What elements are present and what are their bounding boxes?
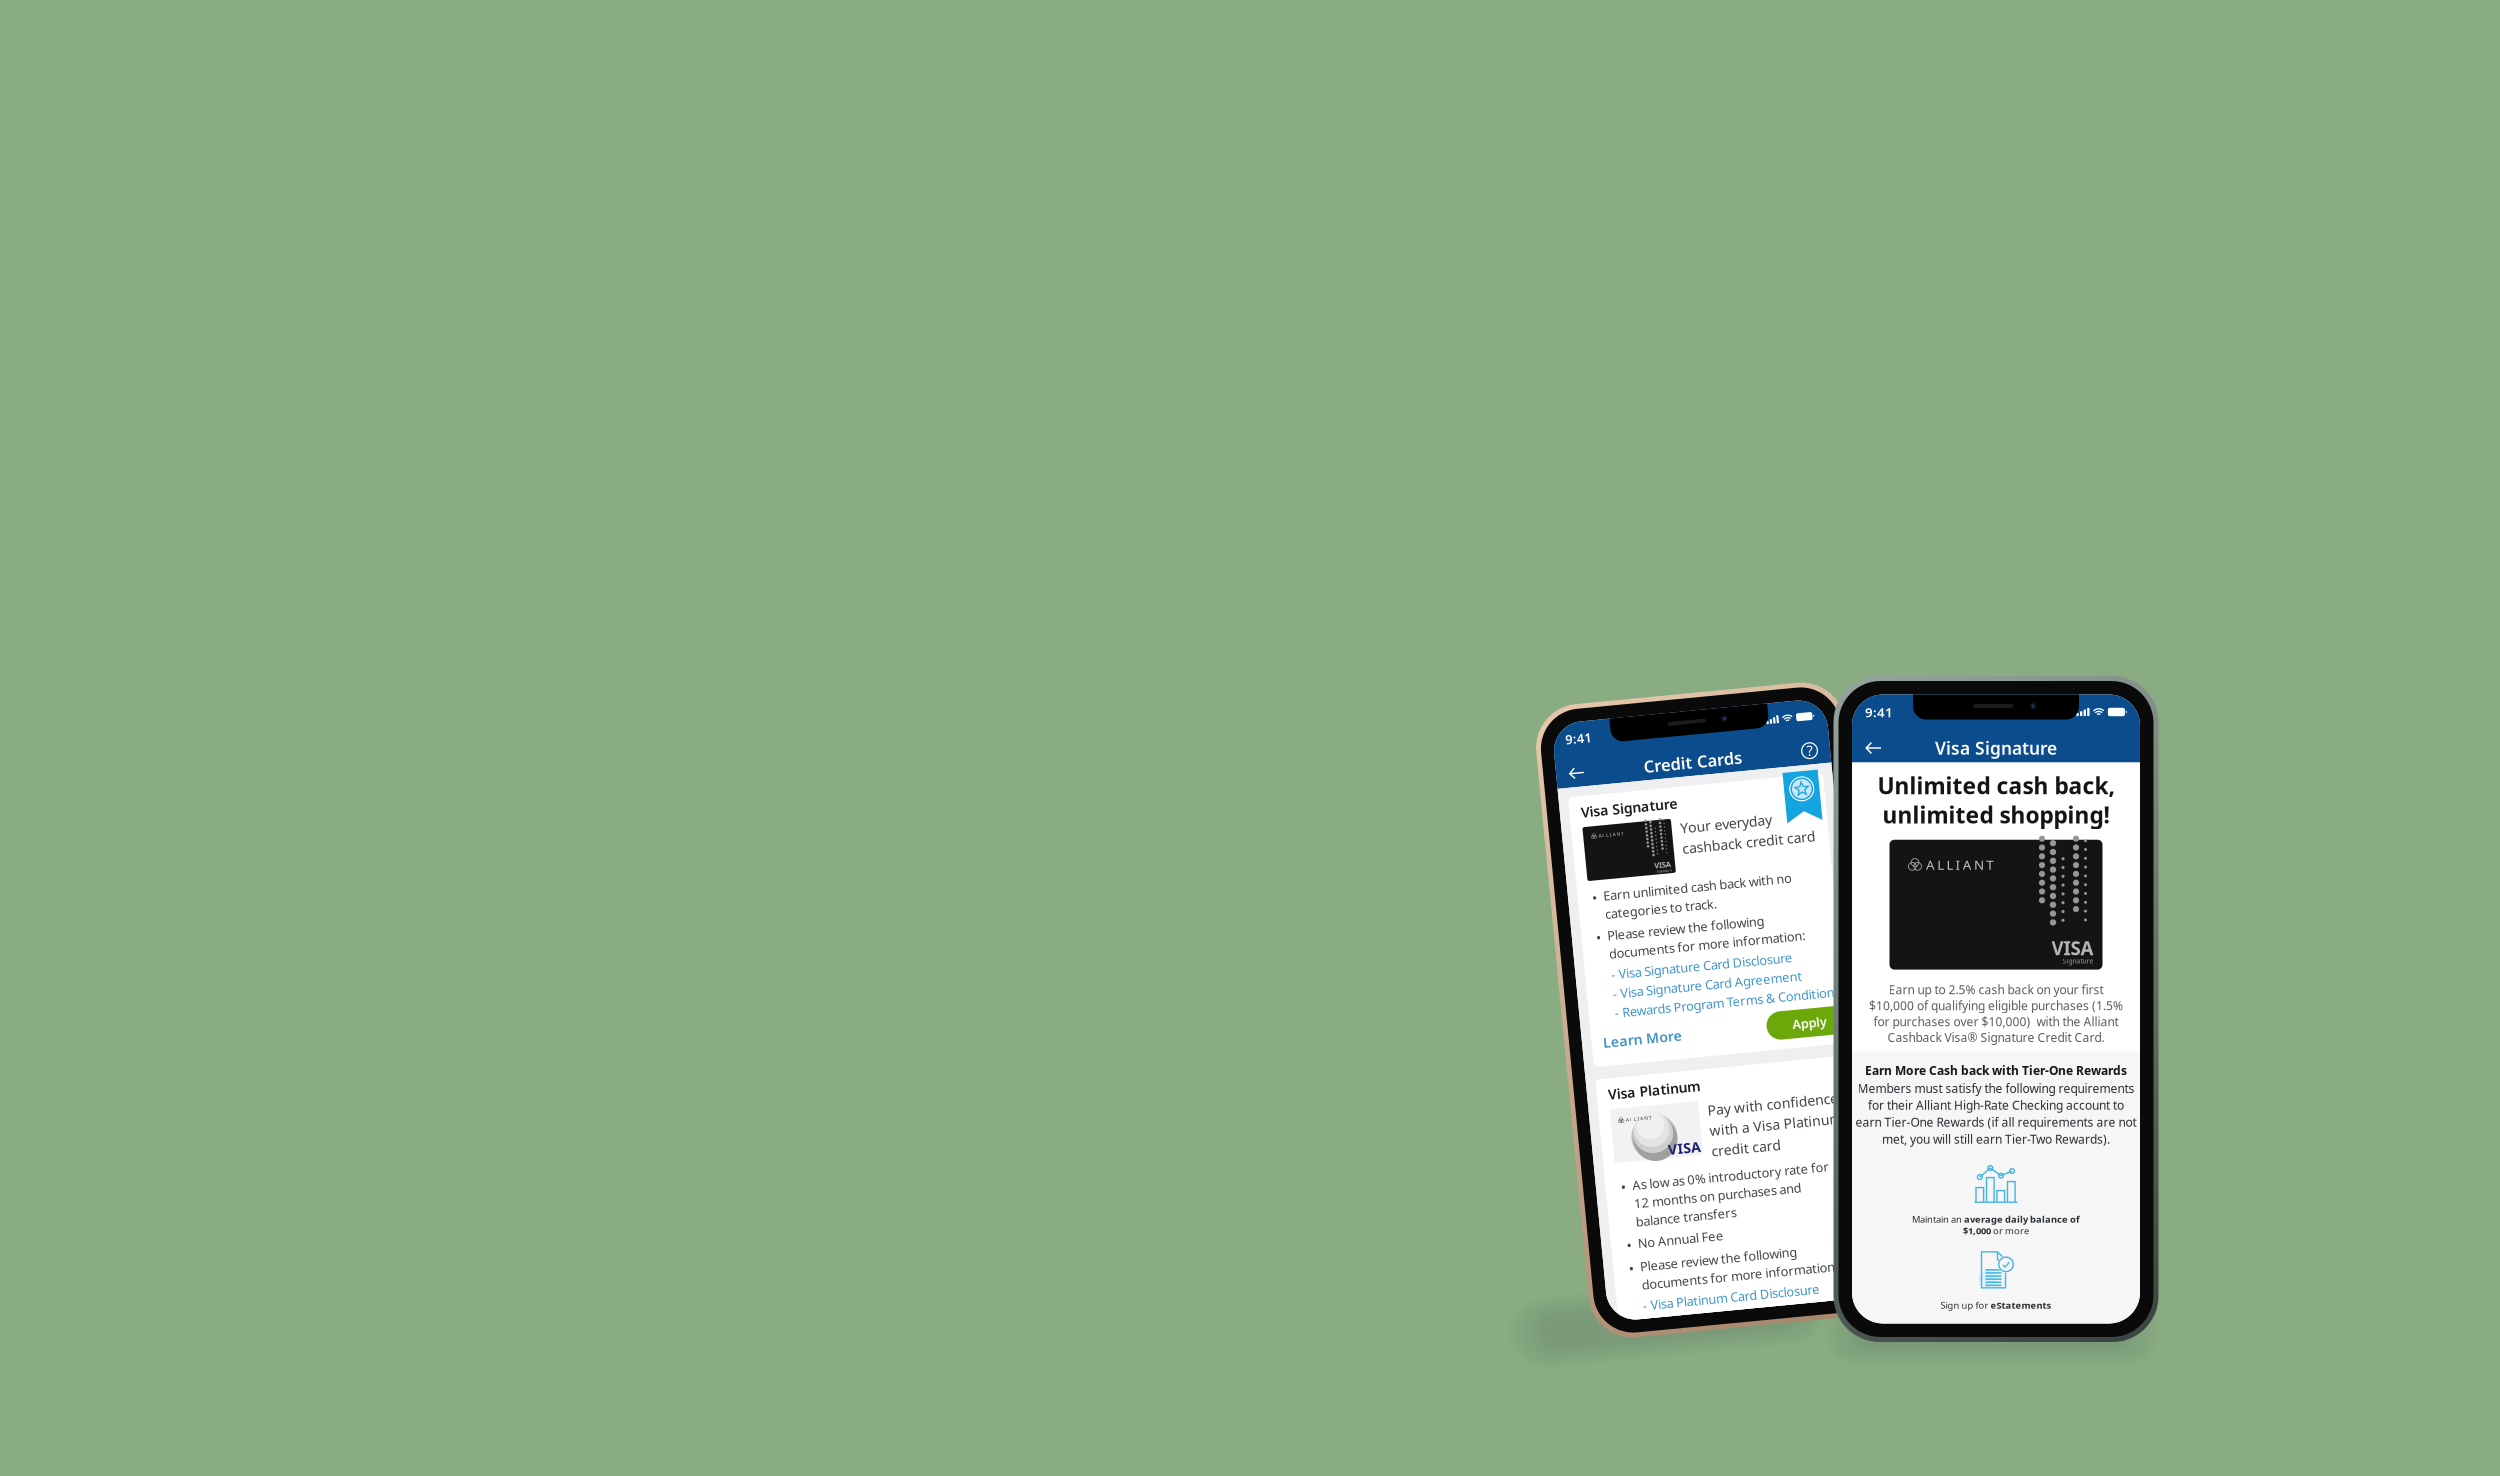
staticText: Visa Signature	[1595, 780, 1697, 800]
button[interactable]: -	[1610, 994, 1847, 1012]
staticText: Rewards Program Terms & Conditions	[1618, 994, 1847, 1012]
staticText: Earn up to 2.5% cash back on your first	[1888, 982, 2103, 997]
staticText: 9:41	[1586, 704, 1614, 722]
staticText: I	[1623, 813, 1625, 820]
staticText: VISA	[2051, 936, 2093, 960]
button[interactable]: -	[1610, 1302, 1796, 1319]
staticText: A	[1926, 856, 1935, 873]
staticText: Learn More	[1595, 1023, 1678, 1042]
staticText: A	[1963, 856, 1972, 873]
staticText: balance transfers	[1611, 1214, 1717, 1231]
button[interactable]: Back	[1852, 735, 1894, 761]
staticText: -	[1610, 974, 1614, 991]
staticText: documents for more information:	[1611, 1280, 1818, 1298]
staticText: categories to track.	[1610, 890, 1728, 908]
staticText: A	[1611, 813, 1614, 820]
staticText: L	[1946, 856, 1953, 873]
staticText: with a Visa Platinum	[1697, 1125, 1837, 1145]
staticText: -	[1610, 1302, 1614, 1319]
staticText: L	[1615, 813, 1618, 820]
staticText: T	[1635, 1112, 1638, 1119]
staticText: $10,000 of qualifying eligible purchases…	[1869, 998, 2123, 1013]
staticText: unlimited shopping!	[1882, 800, 2109, 830]
staticText: Cashback Visa® Signature Credit Card.	[1887, 1029, 2104, 1045]
staticText: T	[1986, 856, 1993, 873]
staticText: Visa Platinum Card Agreement	[1618, 1322, 1804, 1340]
staticText: -	[1610, 953, 1614, 971]
staticText: documents for more information:	[1610, 932, 1817, 949]
staticText: Sign up for eStatements	[1940, 1299, 2051, 1311]
staticText: No Annual Fee	[1611, 1236, 1701, 1254]
staticText: •	[1598, 871, 1604, 890]
staticText: Visa Signature Card Agreement	[1618, 974, 1809, 991]
staticText: 9:41	[1865, 703, 1893, 721]
staticText: As low as 0% introductory rate for	[1611, 1175, 1818, 1193]
staticText: Earn unlimited cash back with no	[1610, 871, 1808, 888]
staticText: met, you will still earn Tier-Two Reward…	[1882, 1131, 2110, 1147]
staticText: for purchases over $10,000) with the All…	[1873, 1013, 2118, 1029]
staticText: N	[1630, 813, 1634, 820]
staticText: VISA	[1666, 848, 1684, 858]
button[interactable]: -	[1610, 953, 1801, 971]
staticText: Your everyday	[1697, 807, 1793, 826]
staticText: I	[1956, 856, 1961, 873]
staticText: Please review the following	[1610, 913, 1775, 930]
staticText: -	[1610, 1322, 1614, 1340]
staticText: Visa Platinum Card Disclosure	[1618, 1302, 1796, 1319]
staticText: L	[1619, 813, 1622, 820]
staticText: Visa Signature Card Disclosure	[1618, 953, 1801, 971]
staticText: Maintain an average daily balance of	[1912, 1213, 2080, 1225]
staticText: Please review the following	[1611, 1261, 1776, 1279]
staticText: N	[1630, 1112, 1634, 1119]
staticText: Signature	[2062, 956, 2093, 965]
staticText: Members must satisfy the following requi…	[1857, 1080, 2134, 1096]
staticText: Unlimited cash back,	[1877, 770, 2114, 801]
button[interactable]: Help	[1818, 735, 1861, 762]
staticText: N	[1974, 856, 1984, 873]
staticText: Pay with confidence	[1697, 1104, 1834, 1123]
staticText: A	[1626, 813, 1629, 820]
staticText: L	[1937, 856, 1944, 873]
staticText: Earn More Cash back with Tier-One Reward…	[1865, 1062, 2127, 1078]
button[interactable]: Back	[1573, 736, 1615, 762]
button[interactable]: Learn More	[1595, 1019, 1678, 1046]
staticText: VISA	[1652, 1141, 1686, 1160]
button[interactable]: Apply	[1767, 1018, 1857, 1047]
staticText: -	[1610, 994, 1614, 1012]
staticText: •	[1599, 1261, 1605, 1280]
staticText: $1,000 or more	[1963, 1224, 2029, 1237]
staticText: Credit Cards	[1665, 737, 1769, 760]
staticText: Apply	[1794, 1024, 1830, 1041]
button[interactable]: -	[1610, 1322, 1804, 1340]
staticText: for their Alliant High-Rate Checking acc…	[1868, 1097, 2124, 1113]
staticText: L	[1619, 1112, 1622, 1119]
staticText: earn Tier-One Rewards (if all requiremen…	[1855, 1114, 2136, 1130]
staticText: ?	[1836, 739, 1842, 758]
button[interactable]: -	[1610, 974, 1809, 991]
staticText: cashback credit card	[1697, 828, 1837, 848]
staticText: Visa Platinum	[1595, 1077, 1692, 1097]
staticText: Signature	[1668, 857, 1684, 862]
staticText: credit card	[1697, 1147, 1770, 1166]
staticText: •	[1599, 1236, 1605, 1256]
staticText: A	[1626, 1112, 1629, 1119]
staticText: 12 months on purchases and	[1611, 1194, 1787, 1212]
staticText: Visa Signature	[1935, 736, 2057, 759]
